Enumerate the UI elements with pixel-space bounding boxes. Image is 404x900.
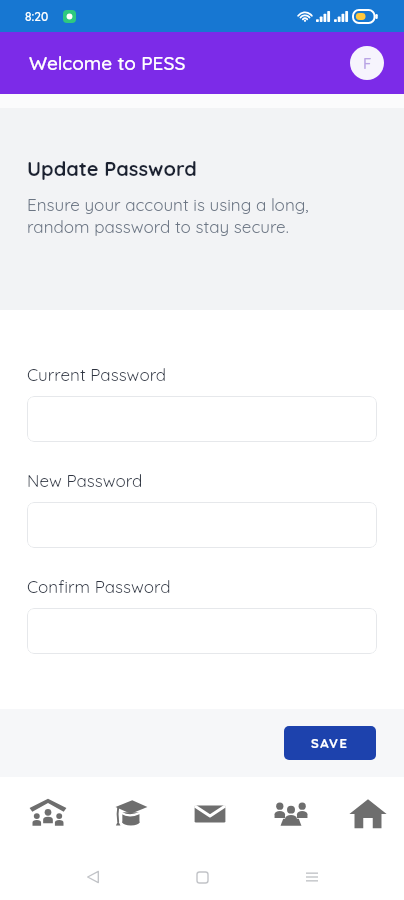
staticText: Confirm Password [27, 576, 171, 597]
button[interactable] [27, 608, 377, 654]
staticText: Ensure your account is using a long, ran… [27, 194, 309, 237]
button[interactable] [27, 502, 377, 548]
staticText: Current Password [27, 364, 167, 385]
staticText: Welcome to PESS [29, 51, 186, 75]
staticText: New Password [27, 470, 143, 491]
staticText: SAVE [311, 735, 349, 751]
button[interactable]: Home [331, 781, 404, 846]
button[interactable]: Profile [350, 46, 384, 80]
button[interactable]: Parents [7, 781, 88, 846]
button[interactable]: Back [76, 860, 110, 894]
button[interactable]: Community [250, 781, 331, 846]
button[interactable]: Home [185, 860, 219, 894]
button[interactable]: Academics [88, 781, 169, 846]
staticText: Update Password [27, 156, 197, 181]
staticText: F [363, 54, 372, 73]
button[interactable]: Messages [169, 781, 250, 846]
button[interactable] [27, 396, 377, 442]
button[interactable]: SAVE [284, 726, 376, 760]
staticText: 8:20 [25, 9, 49, 24]
button[interactable]: Recent apps [295, 860, 329, 894]
